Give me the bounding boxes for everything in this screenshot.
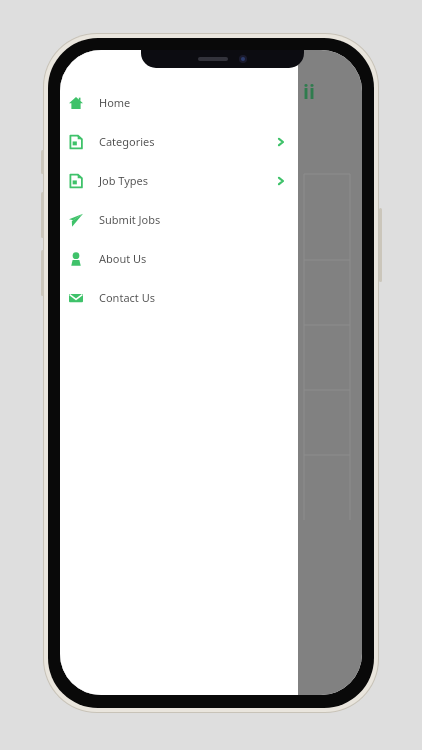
staticText: Categories — [99, 134, 155, 149]
staticText: About Us — [99, 251, 147, 266]
staticText: Home — [99, 95, 131, 110]
staticText: Job Types — [99, 173, 149, 188]
staticText: Contact Us — [99, 290, 155, 305]
button[interactable]: Categories — [60, 122, 298, 161]
staticText: Submit Jobs — [99, 212, 161, 227]
button[interactable]: Submit Jobs — [60, 200, 298, 239]
button[interactable]: Contact Us — [60, 278, 298, 317]
button[interactable]: Job Types — [60, 161, 298, 200]
button[interactable]: About Us — [60, 239, 298, 278]
staticText: ii — [303, 78, 315, 105]
button[interactable]: Home — [60, 83, 298, 122]
